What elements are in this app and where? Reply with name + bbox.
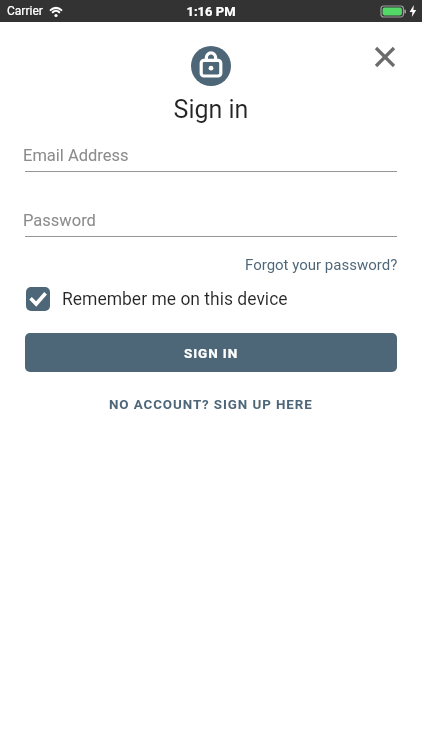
- staticText: Remember me on this device: [62, 289, 288, 310]
- staticText: Forgot your password?: [245, 256, 398, 274]
- button[interactable]: SIGN IN: [25, 333, 397, 372]
- button[interactable]: NO ACCOUNT? SIGN UP HERE: [109, 397, 313, 413]
- staticText: 1:16 PM: [0, 4, 422, 19]
- button[interactable]: Remember me on this device: [26, 287, 288, 311]
- button[interactable]: Forgot your password?: [245, 256, 398, 274]
- staticText: NO ACCOUNT? SIGN UP HERE: [109, 397, 313, 413]
- staticText: Email Address: [23, 146, 129, 165]
- staticText: Sign in: [0, 95, 422, 124]
- staticText: SIGN IN: [184, 345, 239, 361]
- staticText: Carrier: [7, 4, 43, 18]
- staticText: Password: [23, 211, 96, 230]
- button[interactable]: [363, 35, 407, 79]
